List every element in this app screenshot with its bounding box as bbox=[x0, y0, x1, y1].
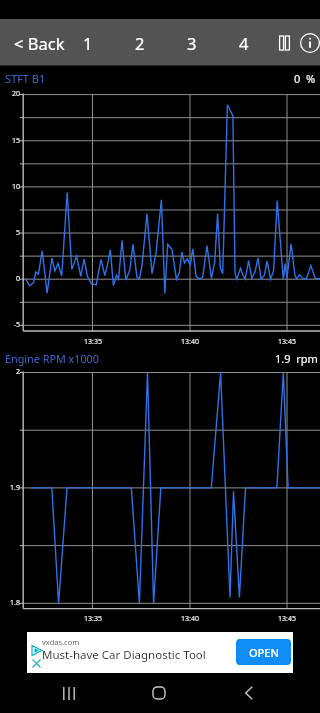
button[interactable]: Home bbox=[139, 673, 179, 713]
button[interactable]: Pause bbox=[267, 26, 301, 60]
button[interactable]: Back bbox=[229, 673, 269, 713]
staticText: 20 bbox=[0, 89, 20, 99]
staticText: 1.9 bbox=[0, 483, 20, 493]
staticText: 13:35 bbox=[80, 337, 106, 347]
staticText: 4 bbox=[239, 32, 249, 54]
staticText: 13:40 bbox=[177, 337, 203, 347]
staticText: 13:45 bbox=[274, 337, 300, 347]
staticText: 13:40 bbox=[177, 614, 203, 624]
staticText: Must-have Car Diagnostic Tool bbox=[42, 647, 206, 663]
staticText: 2 bbox=[135, 32, 145, 54]
button[interactable]: 2 bbox=[121, 19, 159, 66]
button[interactable]: < Back bbox=[6, 23, 73, 63]
button[interactable]: Recent apps bbox=[49, 673, 89, 713]
staticText: 3 bbox=[187, 32, 197, 54]
staticText: 13:35 bbox=[80, 614, 106, 624]
staticText: 2 bbox=[0, 367, 20, 377]
button[interactable]: Info bbox=[293, 26, 320, 60]
staticText: 10 bbox=[0, 182, 20, 192]
staticText: < Back bbox=[14, 32, 65, 54]
staticText: Engine RPM x1000 bbox=[5, 351, 99, 366]
staticText: 1.9 rpm bbox=[275, 351, 318, 366]
button[interactable]: 3 bbox=[173, 19, 211, 66]
staticText: 5 bbox=[0, 228, 20, 238]
staticText: 1.8 bbox=[0, 598, 20, 608]
staticText: 1 bbox=[83, 32, 93, 54]
other: Close ad bbox=[31, 658, 42, 669]
staticText: STFT B1 bbox=[5, 71, 46, 86]
button[interactable]: OPEN bbox=[236, 639, 291, 665]
staticText: vxdas.com bbox=[42, 637, 80, 647]
staticText: 15 bbox=[0, 136, 20, 146]
button[interactable]: 4 bbox=[225, 19, 263, 66]
other: Ad choices bbox=[30, 644, 44, 658]
button[interactable]: Ad choices bbox=[27, 632, 293, 673]
staticText: OPEN bbox=[249, 645, 279, 660]
staticText: -5 bbox=[0, 320, 20, 330]
staticText: 0 bbox=[0, 274, 20, 284]
button[interactable]: 1 bbox=[69, 19, 107, 66]
staticText: 0 % bbox=[294, 71, 316, 86]
staticText: 13:45 bbox=[274, 614, 300, 624]
